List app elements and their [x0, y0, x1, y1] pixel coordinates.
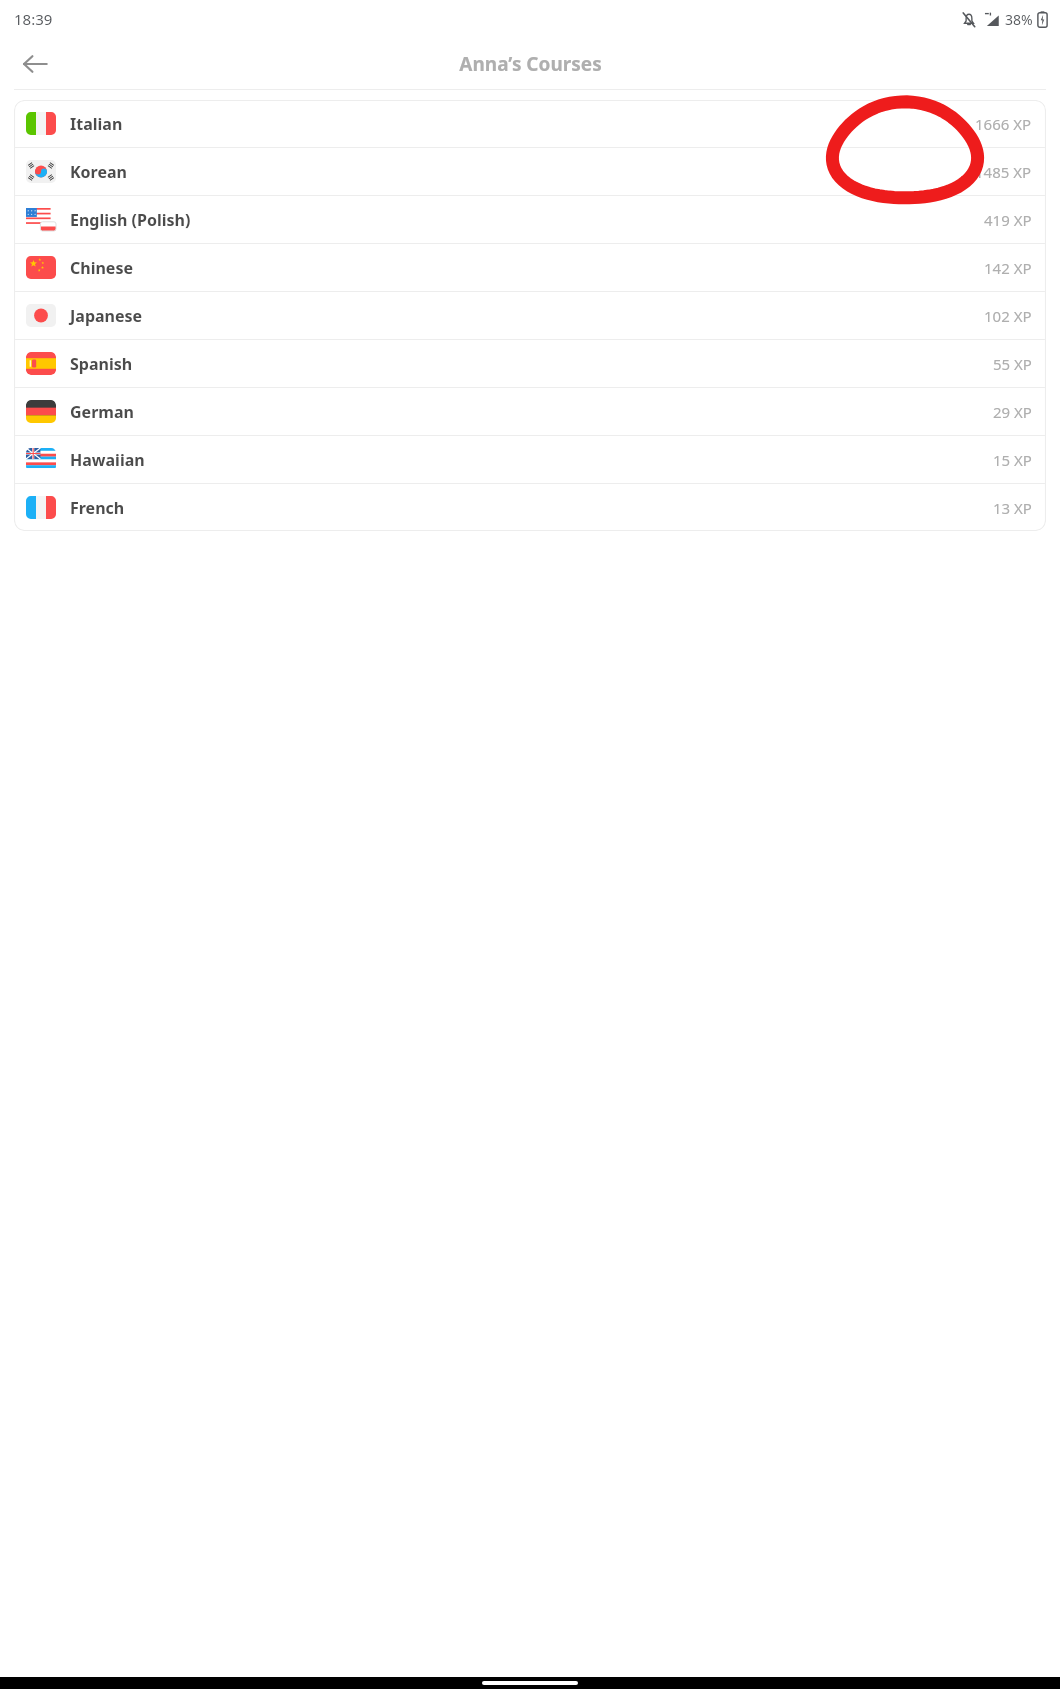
staticText: 29 XP — [993, 402, 1032, 422]
staticText: 1666 XP — [975, 114, 1032, 134]
staticText: Italian — [70, 113, 123, 135]
staticText: Korean — [70, 161, 127, 183]
button[interactable]: Back — [8, 38, 62, 90]
button[interactable]: French — [14, 484, 1046, 531]
staticText: German — [70, 401, 134, 423]
staticText: 15 XP — [993, 450, 1032, 470]
staticText: Hawaiian — [70, 449, 145, 471]
button[interactable]: English (Polish) — [14, 196, 1046, 243]
button[interactable]: Spanish — [14, 340, 1046, 387]
staticText: 102 XP — [984, 306, 1032, 326]
staticText: 18:39 — [14, 9, 53, 29]
staticText: 419 XP — [984, 210, 1032, 230]
staticText: English (Polish) — [70, 209, 191, 231]
button[interactable]: Korean — [14, 148, 1046, 195]
button[interactable]: Hawaiian — [14, 436, 1046, 483]
staticText: 142 XP — [984, 258, 1032, 278]
staticText: 38% — [1005, 10, 1033, 29]
staticText: French — [70, 497, 125, 519]
button[interactable]: Chinese — [14, 244, 1046, 291]
staticText: 1485 XP — [975, 162, 1032, 182]
button[interactable]: Japanese — [14, 292, 1046, 339]
staticText: 13 XP — [993, 498, 1032, 518]
button[interactable]: German — [14, 388, 1046, 435]
staticText: Anna’s Courses — [459, 51, 602, 77]
staticText: Chinese — [70, 257, 133, 279]
staticText: Spanish — [70, 353, 133, 375]
button[interactable]: Italian — [14, 100, 1046, 147]
staticText: Japanese — [70, 305, 143, 327]
staticText: 55 XP — [993, 354, 1032, 374]
